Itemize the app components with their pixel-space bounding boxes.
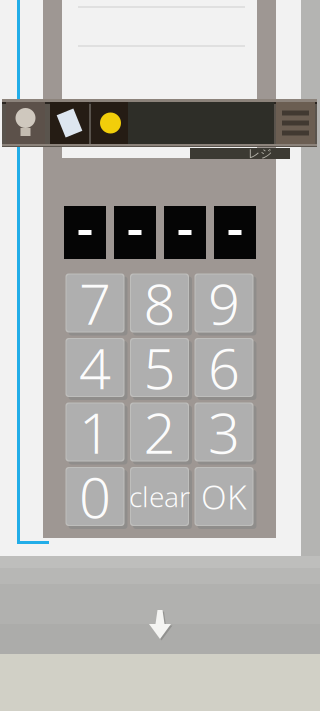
button[interactable]: 2 — [128, 401, 190, 463]
button[interactable]: OK — [193, 465, 255, 527]
staticText: 8 — [143, 266, 175, 340]
staticText: 3 — [208, 395, 240, 469]
staticText: 6 — [208, 330, 240, 405]
button[interactable]: 3 — [193, 401, 255, 463]
button[interactable]: clear — [128, 465, 190, 527]
button[interactable]: 7 — [64, 272, 126, 334]
staticText: 0 — [79, 459, 111, 534]
button[interactable]: 1 — [64, 401, 126, 463]
staticText: レジ — [248, 146, 272, 161]
button[interactable]: Yellow ball — [91, 102, 130, 144]
button[interactable]: 4 — [64, 336, 126, 398]
button[interactable]: 8 — [128, 272, 190, 334]
button[interactable]: 6 — [193, 336, 255, 398]
button[interactable]: 5 — [128, 336, 190, 398]
staticText: clear — [129, 478, 190, 515]
staticText: 9 — [208, 266, 240, 340]
button[interactable]: 0 — [64, 465, 126, 527]
staticText: OK — [201, 474, 247, 519]
button[interactable]: Menu — [276, 102, 315, 144]
button[interactable]: 9 — [193, 272, 255, 334]
staticText: 5 — [143, 330, 175, 405]
staticText: 2 — [143, 395, 175, 469]
staticText: 4 — [79, 330, 111, 405]
button[interactable]: Light bulb — [6, 102, 45, 144]
staticText: 7 — [79, 266, 111, 340]
button[interactable]: Note — [50, 102, 89, 144]
button[interactable]: Go down — [147, 608, 173, 641]
staticText: 1 — [79, 395, 111, 469]
